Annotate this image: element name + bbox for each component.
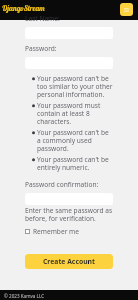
staticText: Password: bbox=[25, 44, 57, 53]
staticText: Enter the same password as before, for v… bbox=[25, 206, 113, 223]
button[interactable]: Create Account bbox=[25, 254, 113, 269]
staticText: Create Account bbox=[43, 257, 95, 266]
staticText: Your password must contain at least 8 ch… bbox=[37, 101, 113, 126]
staticText: Remember me bbox=[33, 227, 79, 236]
staticText: Your password can't be entirely numeric. bbox=[37, 155, 113, 172]
button[interactable]: Remember me bbox=[25, 227, 79, 236]
staticText: DjangoStream bbox=[2, 4, 45, 13]
button[interactable]: Open menu bbox=[120, 3, 133, 16]
staticText: © 2023 Kamva LLC bbox=[4, 293, 45, 299]
staticText: Your password can't be too similar to yo… bbox=[37, 74, 113, 99]
staticText: Password confirmation: bbox=[25, 180, 99, 189]
staticText: Last Name: bbox=[25, 14, 60, 23]
staticText: Your password can't be a commonly used p… bbox=[37, 128, 113, 153]
